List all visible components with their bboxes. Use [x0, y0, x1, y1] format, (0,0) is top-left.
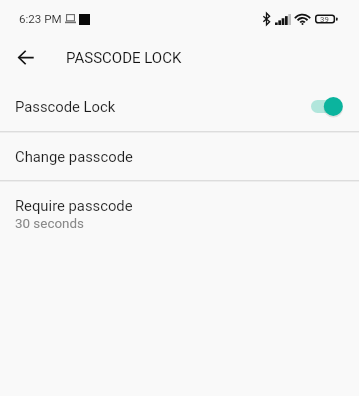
staticText: 6:23 PM	[19, 12, 62, 26]
staticText: 30 seconds	[15, 216, 84, 232]
button[interactable]: Require passcode	[0, 182, 359, 242]
button[interactable]: Passcode Lock toggle	[311, 97, 342, 117]
staticText: Passcode Lock	[15, 98, 116, 115]
staticText: Require passcode	[15, 197, 133, 214]
button[interactable]: Passcode Lock	[0, 81, 359, 132]
button[interactable]: Change passcode	[0, 132, 359, 180]
button[interactable]: Back	[8, 39, 44, 75]
staticText: 39	[320, 15, 329, 24]
staticText: PASSCODE LOCK	[66, 49, 182, 67]
staticText: Change passcode	[15, 148, 133, 165]
